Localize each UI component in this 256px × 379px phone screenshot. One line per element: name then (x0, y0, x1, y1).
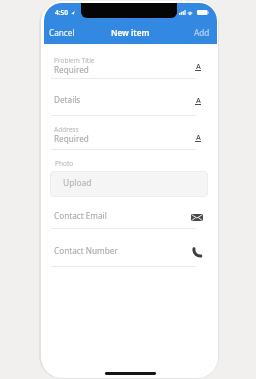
staticText: Details (54, 94, 81, 105)
button[interactable]: Add (176, 24, 210, 40)
button[interactable]: Contact Number (51, 241, 196, 265)
staticText: New item (111, 27, 150, 38)
button[interactable]: Details (51, 91, 196, 115)
staticText: Upload (63, 177, 92, 188)
button[interactable]: Problem Title (51, 54, 196, 78)
staticText: Add (194, 27, 210, 38)
staticText: A (196, 61, 201, 69)
staticText: Required (54, 64, 89, 75)
staticText: A (196, 95, 201, 103)
staticText: Photo (55, 159, 74, 168)
staticText: Problem Title (54, 56, 95, 65)
button[interactable]: Address (51, 123, 196, 149)
button[interactable]: Contact Email (51, 206, 196, 228)
staticText: 4:50 (55, 8, 69, 17)
button[interactable]: Upload (50, 171, 208, 197)
staticText: Contact Number (54, 245, 118, 256)
staticText: A (196, 132, 201, 140)
staticText: Contact Email (54, 210, 107, 221)
button[interactable]: Cancel (47, 24, 89, 40)
staticText: Address (54, 125, 79, 134)
staticText: Cancel (49, 27, 75, 38)
staticText: Required (54, 133, 89, 144)
